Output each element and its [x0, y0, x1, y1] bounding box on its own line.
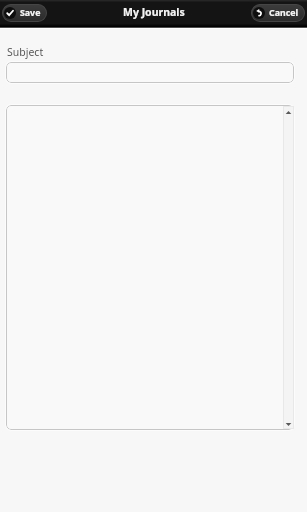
button[interactable]: Cancel — [251, 4, 305, 22]
button[interactable]: Scroll — [283, 106, 294, 429]
staticText: My Journals — [123, 5, 185, 19]
staticText: Cancel — [269, 7, 299, 19]
button[interactable] — [6, 62, 294, 83]
button[interactable] — [6, 105, 294, 430]
button[interactable]: Save — [2, 4, 47, 22]
staticText: Subject — [7, 45, 44, 59]
staticText: Save — [20, 7, 41, 19]
